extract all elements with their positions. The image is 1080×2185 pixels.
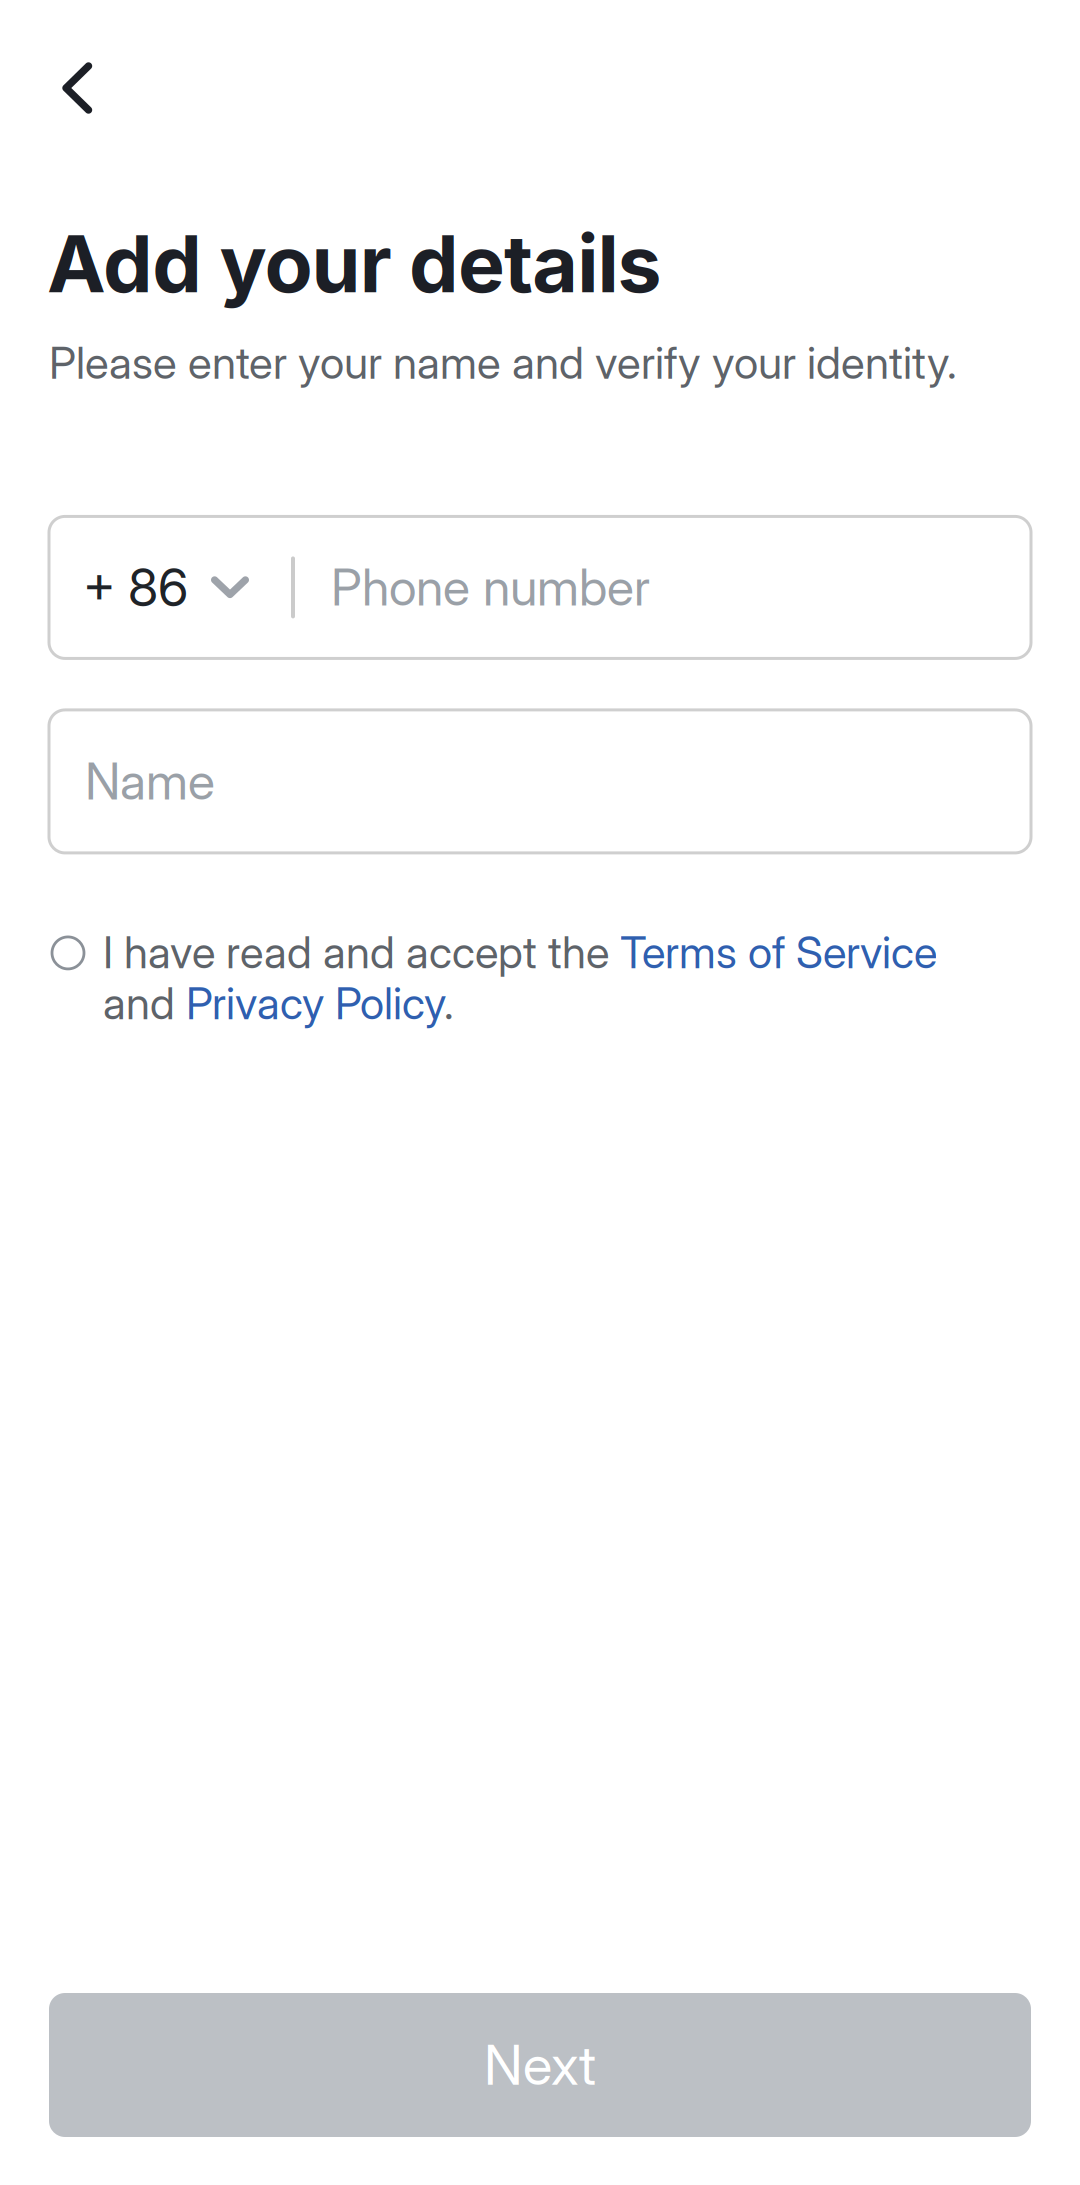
button[interactable]: Next <box>49 1993 1031 2137</box>
staticText: I have read and accept the Terms of Serv… <box>103 926 937 1030</box>
staticText: Phone number <box>331 557 650 618</box>
staticText: Add your details <box>47 216 661 311</box>
button[interactable]: I have read and accept the Terms of Serv… <box>49 926 1031 1030</box>
button[interactable]: Select country calling code <box>49 516 291 658</box>
staticText: Name <box>85 751 215 812</box>
button[interactable]: Name <box>49 710 1031 853</box>
staticText: + 86 <box>83 556 188 619</box>
button[interactable]: Phone number <box>295 516 1031 658</box>
staticText: Please enter your name and verify your i… <box>49 336 957 389</box>
staticText: Next <box>484 2032 596 2098</box>
button[interactable]: Back <box>22 33 132 143</box>
